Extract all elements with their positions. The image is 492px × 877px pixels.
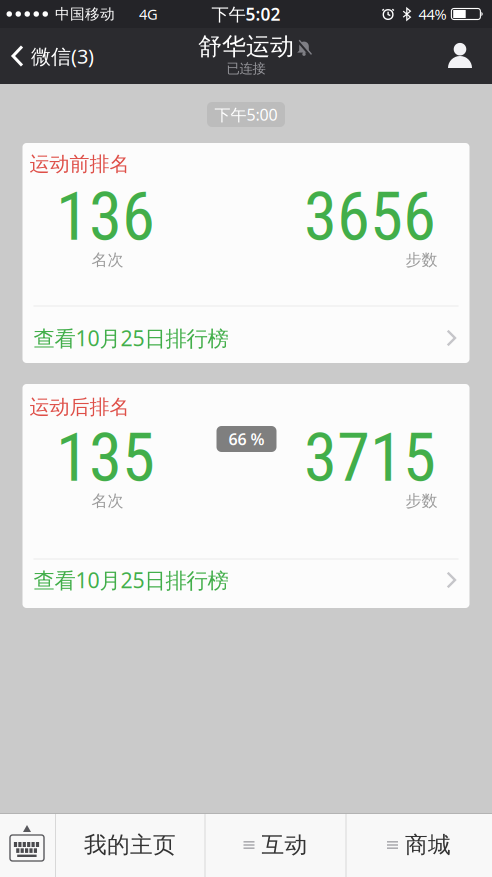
button[interactable]: 我的主页: [55, 813, 204, 877]
button[interactable]: 互动: [205, 813, 345, 877]
staticText: 查看10月25日排行榜: [33, 566, 228, 594]
button[interactable]: 查看10月25日排行榜: [22, 306, 469, 363]
staticText: 步数: [405, 491, 437, 511]
staticText: 微信(3): [31, 43, 94, 69]
button[interactable]: 切换到键盘输入: [0, 811, 55, 875]
staticText: 中国移动: [55, 5, 115, 23]
staticText: 我的主页: [84, 831, 176, 859]
staticText: 查看10月25日排行榜: [33, 324, 228, 352]
staticText: 下午5:02: [211, 2, 280, 25]
staticText: 运动后排名: [29, 395, 129, 419]
staticText: 3656: [304, 178, 436, 256]
button[interactable]: 查看10月25日排行榜: [22, 559, 469, 608]
staticText: 互动: [261, 831, 307, 859]
staticText: 44%: [418, 4, 446, 24]
staticText: 步数: [405, 250, 437, 270]
staticText: 4G: [139, 4, 158, 24]
staticText: 运动前排名: [29, 152, 129, 176]
staticText: 3715: [304, 419, 436, 497]
button[interactable]: 微信(3): [0, 28, 94, 84]
staticText: 下午5:00: [214, 104, 277, 125]
button[interactable]: 联系人: [0, 28, 473, 68]
staticText: 名次: [91, 491, 123, 511]
staticText: 名次: [91, 250, 123, 270]
staticText: 商城: [405, 831, 451, 859]
button[interactable]: 商城: [346, 813, 491, 877]
staticText: 已连接: [226, 60, 265, 77]
staticText: 135: [56, 419, 155, 497]
staticText: 66 %: [228, 428, 264, 450]
staticText: 136: [56, 178, 155, 256]
staticText: 舒华运动: [198, 32, 294, 61]
